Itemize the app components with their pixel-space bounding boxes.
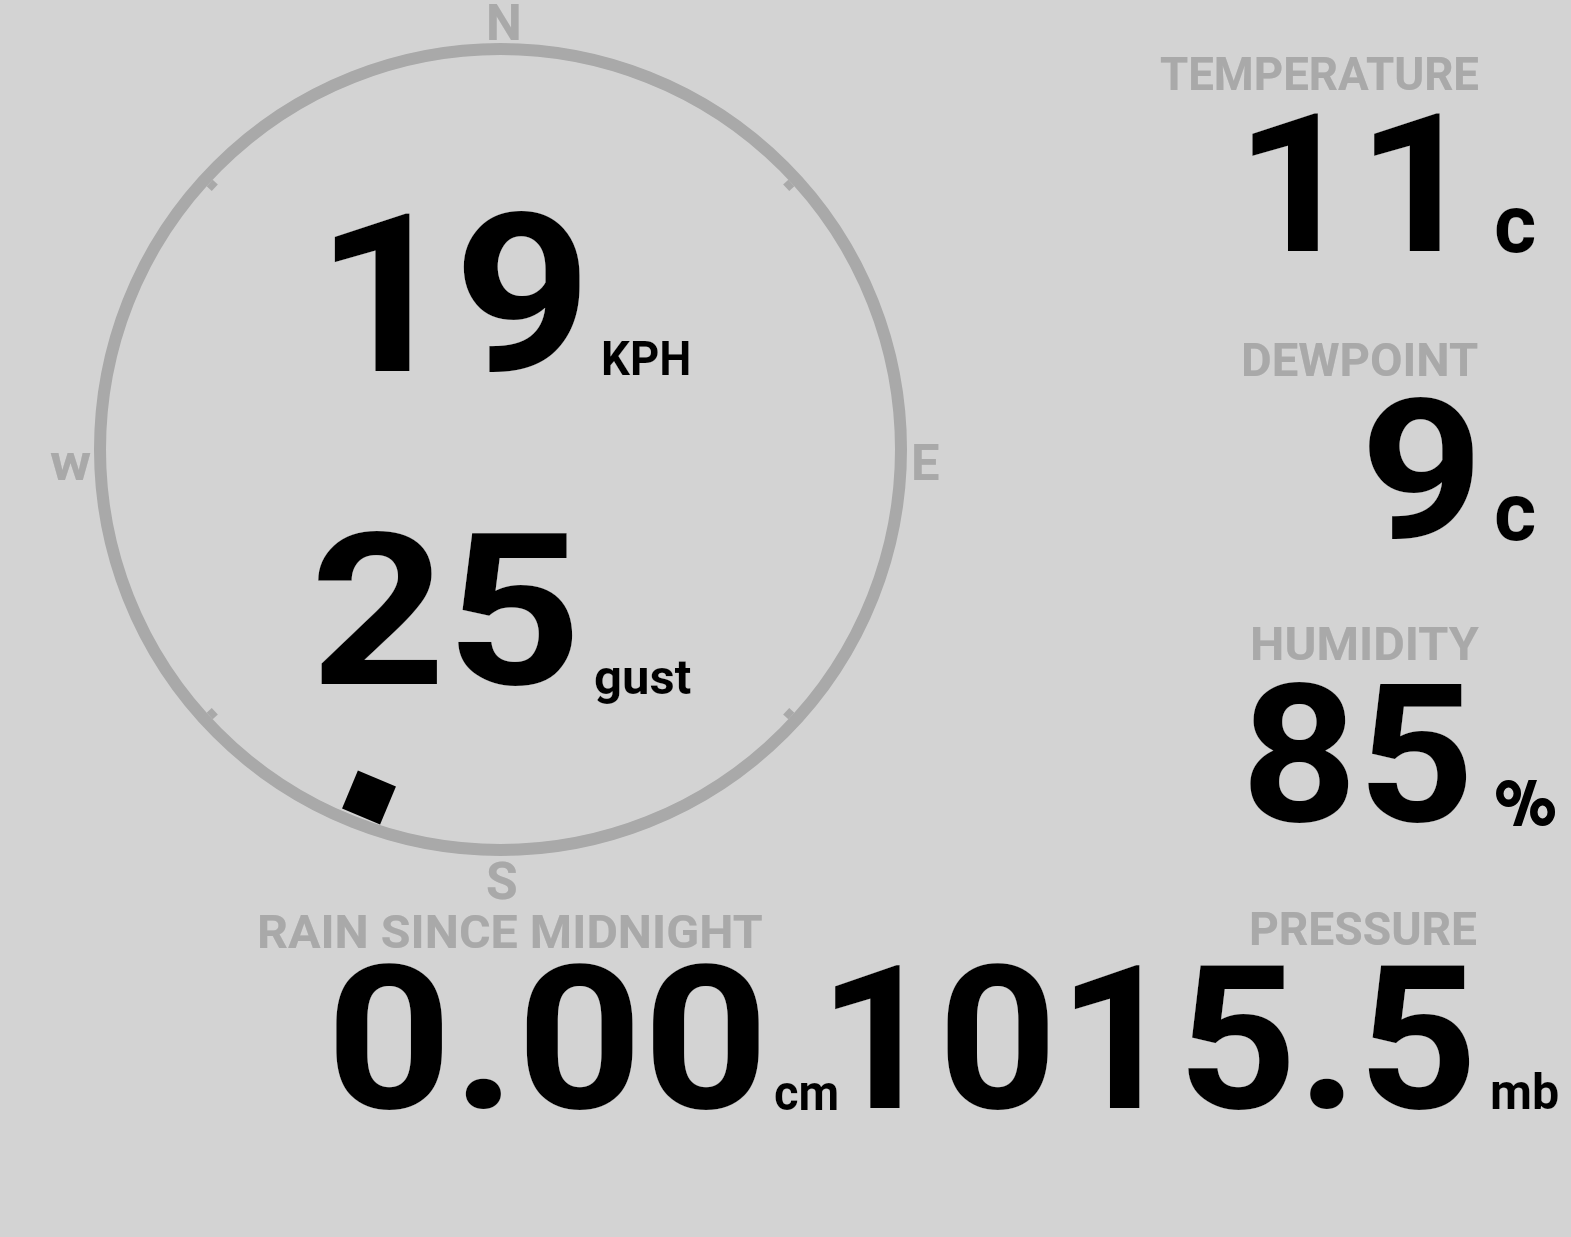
staticText: w: [50, 434, 91, 493]
staticText: 0.00: [326, 922, 770, 1156]
staticText: RAIN SINCE MIDNIGHT: [257, 905, 763, 959]
staticText: TEMPERATURE: [1160, 47, 1479, 101]
button[interactable]: Rain since midnight 0.00 cm: [250, 900, 850, 1130]
staticText: gust: [594, 649, 692, 706]
staticText: KPH: [601, 331, 692, 387]
staticText: PRESSURE: [1249, 902, 1477, 956]
button[interactable]: Pressure 1015.5 mb: [855, 900, 1570, 1130]
staticText: HUMIDITY: [1250, 617, 1479, 671]
button[interactable]: Humidity 85 percent: [1150, 605, 1570, 885]
button[interactable]: Dewpoint 9 degrees Celsius: [1150, 320, 1570, 600]
staticText: 25: [310, 487, 583, 735]
staticText: mb: [1490, 1063, 1560, 1122]
staticText: S: [486, 851, 518, 911]
staticText: 1015.5: [818, 922, 1478, 1156]
staticText: 19: [315, 167, 592, 425]
staticText: c: [1494, 177, 1537, 272]
button[interactable]: Temperature 11 degrees Celsius: [1150, 40, 1570, 310]
other: Weather station dashboard: [0, 0, 1571, 1237]
button[interactable]: Wind 19 KPH gusting 25: [94, 44, 906, 856]
staticText: cm: [774, 1064, 840, 1123]
staticText: 11: [1235, 73, 1478, 298]
staticText: 85: [1241, 642, 1475, 869]
staticText: E: [911, 433, 940, 492]
staticText: N: [486, 0, 522, 52]
staticText: c: [1494, 465, 1537, 560]
staticText: DEWPOINT: [1241, 333, 1479, 387]
staticText: 9: [1360, 357, 1485, 586]
